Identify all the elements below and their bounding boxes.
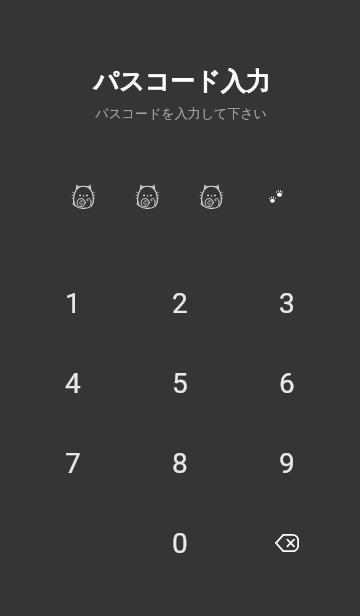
staticText: 6 <box>279 367 295 400</box>
button[interactable]: 7 <box>20 423 126 503</box>
button[interactable]: 2 <box>126 263 233 343</box>
button[interactable]: 6 <box>233 343 340 423</box>
staticText: 0 <box>172 527 188 560</box>
button[interactable]: 1 <box>20 263 126 343</box>
staticText: 7 <box>65 447 81 480</box>
staticText: 8 <box>172 447 188 480</box>
button[interactable]: 3 <box>233 263 340 343</box>
other: Digit 3 entered <box>179 178 243 214</box>
staticText: 1 <box>65 287 81 320</box>
staticText: パスコード入力 <box>93 66 271 97</box>
staticText: 4 <box>65 367 81 400</box>
button[interactable]: 9 <box>233 423 340 503</box>
staticText: 5 <box>172 367 188 400</box>
staticText: 3 <box>279 287 295 320</box>
button[interactable]: Backspace <box>233 503 340 583</box>
staticText: 2 <box>172 287 188 320</box>
button[interactable]: 5 <box>126 343 233 423</box>
other: Digit 4 empty <box>243 178 307 214</box>
staticText: パスコードを入力して下さい <box>95 105 267 121</box>
button[interactable]: 4 <box>20 343 126 423</box>
button[interactable]: 8 <box>126 423 233 503</box>
button[interactable]: 0 <box>126 503 233 583</box>
staticText: 9 <box>279 447 295 480</box>
other: Digit 1 entered <box>51 178 115 214</box>
other: Digit 2 entered <box>115 178 179 214</box>
